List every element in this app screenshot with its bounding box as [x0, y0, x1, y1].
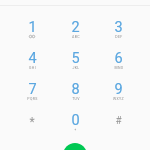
- staticText: 4: [28, 50, 37, 67]
- staticText: ABC: [72, 35, 80, 39]
- staticText: +: [74, 128, 77, 132]
- staticText: JKL: [72, 66, 80, 70]
- staticText: WXYZ: [113, 97, 124, 101]
- staticText: GHI: [29, 66, 36, 70]
- button[interactable]: 9: [97, 76, 140, 107]
- button[interactable]: 5: [54, 45, 97, 76]
- staticText: 5: [71, 50, 80, 67]
- staticText: *: [29, 115, 35, 129]
- button[interactable]: 6: [97, 45, 140, 76]
- staticText: MNO: [114, 66, 124, 70]
- button[interactable]: #: [97, 107, 140, 138]
- button[interactable]: 0: [54, 107, 97, 138]
- button[interactable]: 1: [10, 14, 54, 45]
- button[interactable]: 2: [54, 14, 97, 45]
- staticText: 1: [28, 19, 37, 36]
- button[interactable]: *: [10, 107, 54, 138]
- button[interactable]: 7: [10, 76, 54, 107]
- staticText: 3: [114, 19, 123, 36]
- button[interactable]: Call: [63, 143, 87, 150]
- staticText: PQRS: [27, 97, 38, 101]
- staticText: DEF: [115, 35, 123, 39]
- staticText: 7: [28, 81, 37, 98]
- staticText: 8: [71, 81, 80, 98]
- staticText: 0: [71, 112, 80, 129]
- button[interactable]: 3: [97, 14, 140, 45]
- staticText: TUV: [72, 97, 80, 101]
- staticText: 2: [71, 19, 80, 36]
- staticText: #: [115, 115, 122, 127]
- staticText: 6: [114, 50, 123, 67]
- staticText: 9: [114, 81, 123, 98]
- button[interactable]: 8: [54, 76, 97, 107]
- button[interactable]: 4: [10, 45, 54, 76]
